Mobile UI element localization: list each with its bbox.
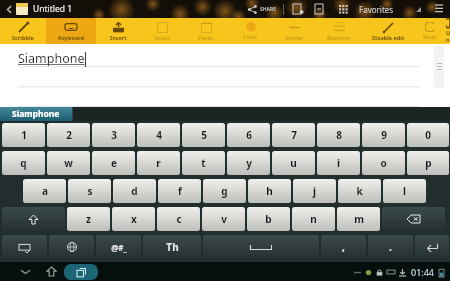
button[interactable]: w <box>47 151 90 175</box>
button[interactable]: 9 <box>362 123 405 147</box>
button[interactable]: z <box>67 207 110 231</box>
staticText: Siamphone <box>18 50 85 67</box>
staticText: SHARE <box>260 6 277 13</box>
staticText: Disable edit <box>372 34 405 41</box>
button[interactable]: Paste <box>184 18 228 44</box>
button[interactable]: SHARE <box>248 5 277 14</box>
staticText: a <box>42 184 48 198</box>
staticText: Stroke <box>285 34 303 41</box>
button[interactable]: Disable edit <box>362 18 414 44</box>
button[interactable]: c <box>157 207 200 231</box>
staticText: y <box>246 156 252 170</box>
staticText: r <box>156 156 161 170</box>
button[interactable]: Language <box>49 235 94 259</box>
staticText: q <box>20 156 27 170</box>
button[interactable]: 4 <box>137 123 180 147</box>
button[interactable]: Stroke <box>272 18 316 44</box>
staticText: m <box>354 212 364 226</box>
button[interactable]: 2 <box>47 123 90 147</box>
button[interactable]: i <box>317 151 360 175</box>
button[interactable]: Redo <box>414 18 446 44</box>
staticText: b <box>265 212 272 226</box>
staticText: 5 <box>201 128 207 142</box>
button[interactable]: e <box>92 151 135 175</box>
staticText: Scribble <box>12 34 34 41</box>
button[interactable]: h <box>248 179 291 203</box>
staticText: Th <box>166 240 179 254</box>
button[interactable]: Hide keyboard <box>12 262 38 281</box>
button[interactable]: 0 <box>407 123 449 147</box>
button[interactable]: l <box>383 179 426 203</box>
button[interactable]: v <box>202 207 245 231</box>
button[interactable]: Save as <box>290 1 306 17</box>
button[interactable]: d <box>113 179 156 203</box>
staticText: 2 <box>66 128 72 142</box>
button[interactable]: f <box>158 179 201 203</box>
button[interactable]: Shift <box>2 207 65 231</box>
staticText: 7 <box>291 128 297 142</box>
button[interactable]: 6 <box>227 123 270 147</box>
staticText: 0 <box>425 128 431 142</box>
button[interactable]: Th <box>143 235 201 259</box>
button[interactable]: x <box>112 207 155 231</box>
button[interactable]: u <box>272 151 315 175</box>
button[interactable]: Enter <box>415 235 449 259</box>
staticText: Undo <box>446 29 450 44</box>
staticText: k <box>356 184 363 198</box>
button[interactable]: n <box>292 207 335 231</box>
button[interactable]: Home <box>38 262 64 281</box>
button[interactable]: @#_ <box>96 235 141 259</box>
staticText: g <box>221 184 228 198</box>
staticText: 8 <box>336 128 342 142</box>
button[interactable]: Scribble <box>0 18 46 44</box>
staticText: s <box>87 184 93 198</box>
button[interactable]: Grid <box>335 1 351 17</box>
button[interactable]: 1 <box>2 123 45 147</box>
button[interactable]: Note <box>16 3 28 15</box>
staticText: i <box>337 156 340 170</box>
button[interactable]: t <box>182 151 225 175</box>
button[interactable]: a <box>23 179 66 203</box>
button[interactable]: Menu <box>431 1 447 17</box>
button[interactable]: Recent apps <box>64 264 98 280</box>
button[interactable]: k <box>338 179 381 203</box>
staticText: . <box>389 240 392 254</box>
button[interactable]: , <box>321 235 366 259</box>
button[interactable]: Undo <box>446 18 450 44</box>
button[interactable]: 3 <box>92 123 135 147</box>
button[interactable]: Keyboard settings <box>2 235 47 259</box>
button[interactable]: y <box>227 151 270 175</box>
button[interactable]: 7 <box>272 123 315 147</box>
button[interactable]: Space <box>203 235 319 259</box>
button[interactable]: r <box>137 151 180 175</box>
button[interactable]: Color <box>228 18 272 44</box>
button[interactable]: o <box>362 151 405 175</box>
button[interactable]: Baseline <box>316 18 362 44</box>
button[interactable]: Insert <box>96 18 140 44</box>
staticText: f <box>178 184 182 198</box>
staticText: n <box>310 212 317 226</box>
staticText: w <box>64 156 73 170</box>
button[interactable]: Favorites <box>359 4 421 15</box>
button[interactable]: Export <box>312 1 328 17</box>
staticText: 6 <box>246 128 252 142</box>
button[interactable]: Siamphone <box>0 107 72 121</box>
button[interactable]: . <box>368 235 413 259</box>
button[interactable]: Back <box>2 2 16 16</box>
button[interactable]: 8 <box>317 123 360 147</box>
button[interactable]: Select <box>140 18 184 44</box>
button[interactable]: Backspace <box>382 207 445 231</box>
button[interactable]: 5 <box>182 123 225 147</box>
staticText: x <box>131 212 137 226</box>
staticText: z <box>86 212 91 226</box>
button[interactable]: j <box>293 179 336 203</box>
button[interactable]: g <box>203 179 246 203</box>
button[interactable]: p <box>407 151 449 175</box>
staticText: e <box>111 156 117 170</box>
button[interactable]: Keyboard <box>46 18 96 44</box>
button[interactable]: b <box>247 207 290 231</box>
button[interactable]: m <box>337 207 380 231</box>
button[interactable]: s <box>68 179 111 203</box>
staticText: v <box>221 212 227 226</box>
button[interactable]: q <box>2 151 45 175</box>
